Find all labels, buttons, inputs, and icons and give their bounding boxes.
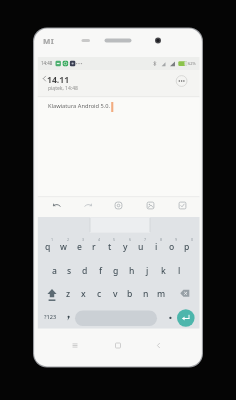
- staticText: q: [45, 241, 51, 253]
- staticText: w: [60, 241, 67, 253]
- staticText: a: [52, 265, 57, 277]
- staticText: MI: [43, 36, 54, 47]
- button[interactable]: w: [55, 238, 71, 256]
- staticText: x: [81, 288, 86, 300]
- staticText: s: [67, 265, 72, 277]
- staticText: j: [146, 265, 149, 277]
- button[interactable]: t: [102, 238, 118, 256]
- button[interactable]: n: [138, 285, 154, 303]
- staticText: u: [138, 241, 144, 253]
- staticText: b: [127, 288, 133, 300]
- button[interactable]: o: [164, 238, 180, 256]
- button[interactable]: g: [108, 262, 124, 280]
- button[interactable]: q: [40, 238, 56, 256]
- button[interactable]: p: [179, 238, 195, 256]
- staticText: c: [97, 288, 102, 300]
- staticText: ?123: [44, 313, 57, 321]
- staticText: o: [169, 241, 175, 253]
- button[interactable]: a: [46, 262, 62, 280]
- button[interactable]: [142, 198, 158, 214]
- staticText: d: [82, 265, 88, 277]
- staticText: e: [77, 241, 82, 253]
- staticText: 2: [67, 237, 70, 242]
- staticText: Klawiatura Android 5.0.: [48, 102, 111, 110]
- button[interactable]: [38, 72, 58, 92]
- staticText: 3: [82, 237, 85, 242]
- button[interactable]: e: [71, 238, 87, 256]
- staticText: 0: [191, 237, 194, 242]
- staticText: piątek, 14:48: [48, 85, 78, 92]
- button[interactable]: d: [77, 262, 93, 280]
- button[interactable]: [80, 198, 96, 214]
- button[interactable]: [111, 339, 125, 351]
- button[interactable]: h: [124, 262, 140, 280]
- staticText: 6: [129, 237, 132, 242]
- button[interactable]: [110, 198, 126, 214]
- button[interactable]: [42, 285, 62, 304]
- staticText: n: [143, 288, 149, 300]
- button[interactable]: k: [155, 262, 171, 280]
- staticText: 14:48: [41, 60, 53, 66]
- staticText: r: [92, 241, 96, 253]
- button[interactable]: [174, 74, 189, 89]
- button[interactable]: f: [93, 262, 109, 280]
- button[interactable]: ?123: [42, 308, 58, 326]
- staticText: p: [184, 241, 190, 253]
- button[interactable]: y: [117, 238, 133, 256]
- staticText: 14.11: [47, 74, 70, 86]
- button[interactable]: [174, 198, 190, 214]
- staticText: k: [161, 265, 166, 277]
- staticText: t: [108, 241, 112, 253]
- staticText: v: [113, 288, 118, 300]
- button[interactable]: r: [86, 238, 102, 256]
- button[interactable]: b: [122, 285, 138, 303]
- staticText: z: [66, 288, 71, 300]
- button[interactable]: s: [61, 262, 77, 280]
- button[interactable]: [61, 309, 76, 326]
- staticText: 62%: [188, 61, 196, 66]
- button[interactable]: [75, 311, 157, 327]
- button[interactable]: [68, 339, 82, 351]
- button[interactable]: l: [171, 262, 187, 280]
- staticText: 5: [113, 237, 116, 242]
- staticText: 4: [98, 237, 101, 242]
- button[interactable]: [152, 339, 166, 351]
- button[interactable]: m: [153, 285, 169, 303]
- button[interactable]: j: [139, 262, 155, 280]
- staticText: 9: [175, 237, 178, 242]
- staticText: f: [99, 265, 103, 277]
- staticText: y: [123, 241, 128, 253]
- button[interactable]: v: [107, 285, 123, 303]
- button[interactable]: u: [133, 238, 149, 256]
- staticText: l: [178, 265, 181, 277]
- button[interactable]: c: [91, 285, 107, 303]
- staticText: g: [113, 265, 119, 277]
- button[interactable]: [163, 309, 178, 326]
- button[interactable]: z: [60, 285, 76, 303]
- staticText: 7: [144, 237, 147, 242]
- staticText: 8: [160, 237, 163, 242]
- staticText: 1: [51, 237, 54, 242]
- button[interactable]: i: [148, 238, 164, 256]
- button[interactable]: [176, 285, 196, 304]
- staticText: h: [129, 265, 135, 277]
- staticText: m: [157, 288, 166, 300]
- button[interactable]: x: [75, 285, 91, 303]
- button[interactable]: [177, 309, 195, 327]
- button[interactable]: [48, 198, 64, 214]
- staticText: i: [155, 241, 158, 253]
